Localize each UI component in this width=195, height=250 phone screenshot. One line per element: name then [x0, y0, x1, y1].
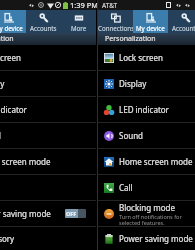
- staticText: 1:39 PM: [70, 0, 97, 10]
- button[interactable]: Accounts: [168, 10, 195, 33]
- staticText: Blocking mode: [119, 202, 175, 213]
- staticText: More: [71, 24, 87, 32]
- button[interactable]: Sound: [0, 123, 96, 148]
- staticText: Turn off notifications for selected feat…: [119, 213, 182, 226]
- staticText: LED indicator: [0, 104, 27, 115]
- button[interactable]: Blocking mode: [98, 201, 195, 226]
- staticText: Accounts: [30, 24, 57, 32]
- button[interactable]: More: [61, 10, 96, 33]
- staticText: Lock screen: [0, 52, 22, 63]
- staticText: OFF: [66, 210, 77, 217]
- staticText: Home screen mode: [119, 156, 193, 167]
- button[interactable]: Accessory: [0, 227, 96, 250]
- staticText: Display: [0, 78, 5, 89]
- staticText: LED indicator: [119, 104, 169, 115]
- staticText: Personalization: [105, 34, 156, 44]
- button[interactable]: Power saving mode: [98, 227, 195, 250]
- button[interactable]: Home screen mode: [0, 149, 96, 174]
- button[interactable]: LED indicator: [0, 97, 96, 122]
- staticText: Call: [119, 182, 133, 193]
- staticText: Accounts: [172, 24, 195, 32]
- staticText: Personalization: [0, 34, 14, 44]
- button[interactable]: My device: [133, 10, 168, 33]
- staticText: Sound: [0, 130, 2, 141]
- staticText: Power saving mode: [119, 233, 193, 244]
- staticText: AT&T: [102, 1, 118, 10]
- button[interactable]: Lock screen: [0, 45, 96, 70]
- button[interactable]: Power saving mode: [0, 201, 96, 226]
- button[interactable]: Call: [98, 175, 195, 200]
- staticText: Accessory: [0, 233, 15, 244]
- button[interactable]: Home screen mode: [98, 149, 195, 174]
- staticText: Power saving mode: [0, 208, 51, 219]
- button[interactable]: Connections: [98, 10, 133, 33]
- button[interactable]: My device: [0, 10, 26, 33]
- button[interactable]: Display: [98, 71, 195, 96]
- button[interactable]: Lock screen: [98, 45, 195, 70]
- button[interactable]: Accounts: [26, 10, 61, 33]
- staticText: My device: [0, 24, 23, 32]
- staticText: Display: [119, 78, 147, 89]
- staticText: Lock screen: [119, 52, 164, 63]
- button[interactable]: OFF: [65, 209, 86, 218]
- button[interactable]: Display: [0, 71, 96, 96]
- staticText: Sound: [119, 130, 144, 141]
- button[interactable]: LED indicator: [98, 97, 195, 122]
- staticText: My device: [136, 24, 165, 32]
- staticText: Connections: [98, 24, 133, 32]
- staticText: Home screen mode: [0, 156, 51, 167]
- button[interactable]: Sound: [98, 123, 195, 148]
